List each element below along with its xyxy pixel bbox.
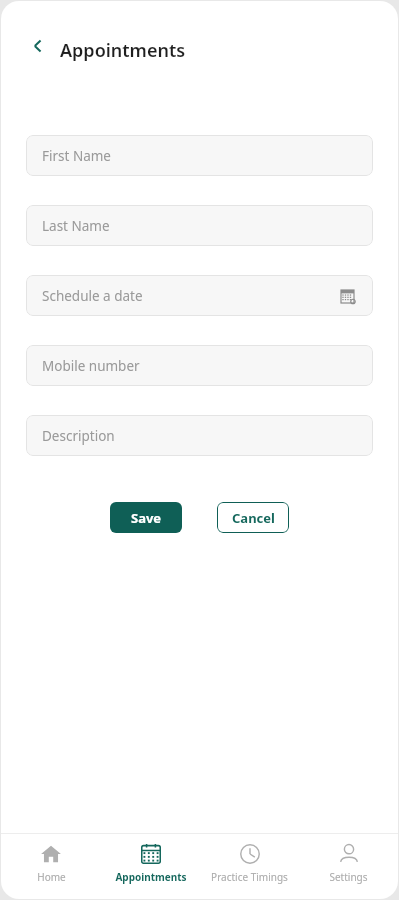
- staticText: Settings: [329, 870, 368, 884]
- button[interactable]: Schedule a date: [26, 275, 373, 316]
- staticText: Last Name: [42, 217, 110, 235]
- button[interactable]: Back: [25, 33, 51, 59]
- button[interactable]: Settings: [299, 834, 398, 899]
- button[interactable]: Home: [1, 834, 101, 899]
- button[interactable]: First Name: [26, 135, 373, 176]
- staticText: Schedule a date: [42, 287, 143, 305]
- staticText: First Name: [42, 147, 111, 165]
- button[interactable]: Practice Timings: [200, 834, 299, 899]
- staticText: Description: [42, 427, 115, 445]
- staticText: Mobile number: [42, 357, 140, 375]
- staticText: Practice Timings: [211, 870, 288, 884]
- button[interactable]: Save: [110, 502, 182, 533]
- button[interactable]: Last Name: [26, 205, 373, 246]
- staticText: Appointments: [115, 870, 187, 884]
- staticText: Cancel: [232, 509, 275, 527]
- staticText: Appointments: [60, 38, 186, 63]
- button[interactable]: Mobile number: [26, 345, 373, 386]
- button[interactable]: Cancel: [217, 502, 289, 533]
- staticText: Home: [37, 870, 66, 884]
- button[interactable]: Description: [26, 415, 373, 456]
- button[interactable]: Appointments: [101, 834, 200, 899]
- staticText: Save: [131, 509, 162, 527]
